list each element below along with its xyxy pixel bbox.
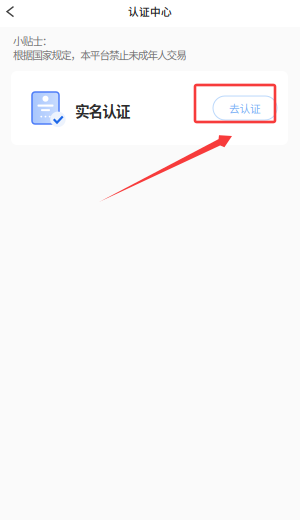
- staticText: 认证中心: [128, 3, 172, 19]
- button[interactable]: 去认证: [213, 96, 277, 120]
- staticText: 根据国家规定，本平台禁止未成年人交易: [13, 47, 187, 62]
- staticText: 小贴士：: [13, 33, 53, 48]
- button[interactable]: Back: [0, 0, 25, 27]
- staticText: 去认证: [229, 100, 261, 116]
- staticText: 实名认证: [75, 100, 131, 121]
